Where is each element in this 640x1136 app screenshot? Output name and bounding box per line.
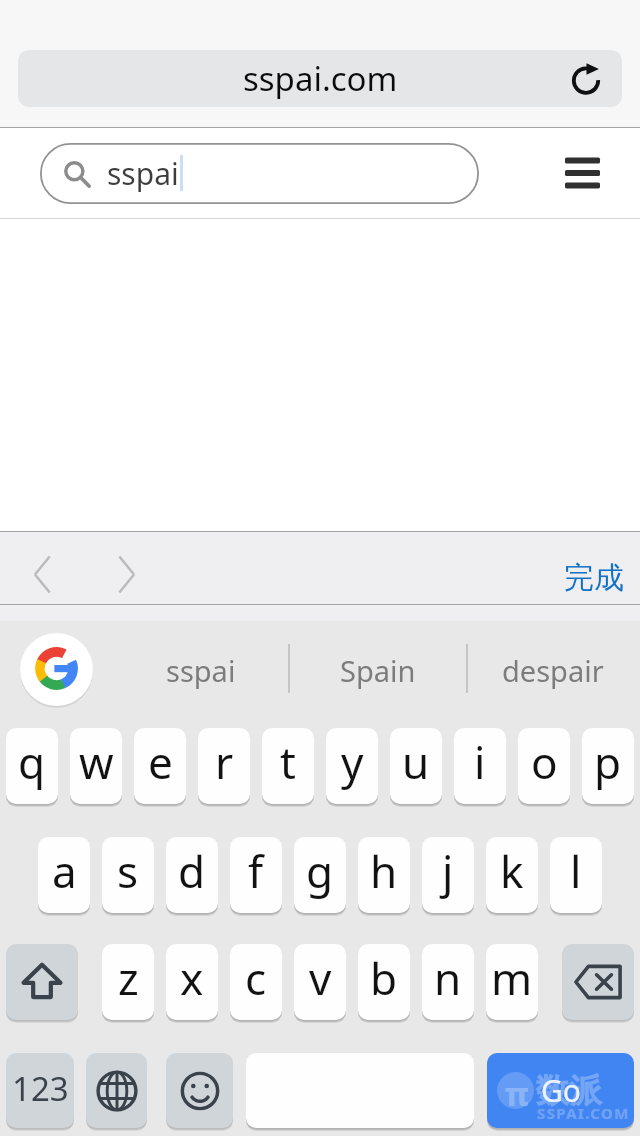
staticText: b <box>370 948 398 1008</box>
staticText: e <box>148 732 173 792</box>
button[interactable]: v <box>294 944 346 1020</box>
button[interactable]: f <box>230 837 282 913</box>
button[interactable]: y <box>326 728 378 804</box>
staticText: g <box>306 841 334 901</box>
staticText: j <box>442 841 454 901</box>
button[interactable]: l <box>550 837 602 913</box>
staticText: Go <box>541 1070 581 1111</box>
button[interactable]: d <box>166 837 218 913</box>
button[interactable]: x <box>166 944 218 1020</box>
button[interactable]: Spain <box>298 650 458 690</box>
button[interactable]: r <box>198 728 250 804</box>
staticText: π <box>505 1072 529 1116</box>
button[interactable]: n <box>422 944 474 1020</box>
button[interactable]: Back <box>10 532 74 604</box>
staticText: Spain <box>340 651 416 690</box>
button[interactable]: sspai.com <box>18 50 622 107</box>
staticText: a <box>52 841 77 901</box>
staticText: d <box>178 841 206 901</box>
staticText: m <box>491 948 533 1008</box>
staticText: p <box>594 732 622 792</box>
staticText: t <box>280 732 296 792</box>
staticText: z <box>118 948 139 1008</box>
button[interactable]: c <box>230 944 282 1020</box>
staticText: q <box>18 732 46 792</box>
button[interactable]: j <box>422 837 474 913</box>
button[interactable]: h <box>358 837 410 913</box>
staticText: n <box>434 948 462 1008</box>
button[interactable]: q <box>6 728 58 804</box>
button[interactable]: Forward <box>95 532 159 604</box>
staticText: y <box>341 732 364 792</box>
button[interactable]: t <box>262 728 314 804</box>
staticText: f <box>248 841 264 901</box>
button[interactable]: despair <box>473 650 633 690</box>
button[interactable]: o <box>518 728 570 804</box>
button[interactable]: g <box>294 837 346 913</box>
button[interactable]: b <box>358 944 410 1020</box>
staticText: SSPAI.COM <box>537 1103 630 1123</box>
button[interactable]: Shift <box>6 944 78 1020</box>
staticText: u <box>402 732 430 792</box>
staticText: h <box>370 841 398 901</box>
button[interactable]: 完成 <box>540 532 640 604</box>
staticText: w <box>79 732 114 792</box>
button[interactable]: k <box>486 837 538 913</box>
button[interactable]: Backspace <box>562 944 634 1020</box>
button[interactable]: a <box>38 837 90 913</box>
staticText: 123 <box>12 1066 69 1111</box>
button[interactable]: s <box>102 837 154 913</box>
button[interactable]: w <box>70 728 122 804</box>
button[interactable]: i <box>454 728 506 804</box>
staticText: despair <box>502 651 604 690</box>
button[interactable]: p <box>582 728 634 804</box>
button[interactable]: m <box>486 944 538 1020</box>
staticText: v <box>309 948 332 1008</box>
button[interactable]: sspai <box>40 143 479 204</box>
staticText: c <box>245 948 267 1008</box>
staticText: i <box>474 732 486 792</box>
button[interactable]: Language <box>86 1053 147 1128</box>
staticText: r <box>215 732 234 792</box>
staticText: sspai <box>166 651 236 690</box>
staticText: o <box>531 732 558 792</box>
staticText: sspai <box>107 153 179 194</box>
staticText: 数派 <box>536 1070 602 1112</box>
staticText: l <box>570 841 582 901</box>
staticText: x <box>180 948 204 1008</box>
button[interactable]: Reload <box>566 59 606 99</box>
button[interactable]: Menu <box>550 141 614 205</box>
button[interactable]: z <box>102 944 154 1020</box>
button[interactable]: Go <box>487 1053 634 1128</box>
button[interactable]: Google <box>20 633 93 706</box>
staticText: sspai.com <box>243 56 398 101</box>
staticText: k <box>500 841 524 901</box>
button[interactable]: Emoji <box>166 1053 233 1128</box>
staticText: s <box>117 841 139 901</box>
button[interactable]: 123 <box>6 1053 74 1128</box>
button[interactable]: e <box>134 728 186 804</box>
staticText: 完成 <box>564 559 624 597</box>
button[interactable]: sspai <box>121 650 281 690</box>
button[interactable]: u <box>390 728 442 804</box>
